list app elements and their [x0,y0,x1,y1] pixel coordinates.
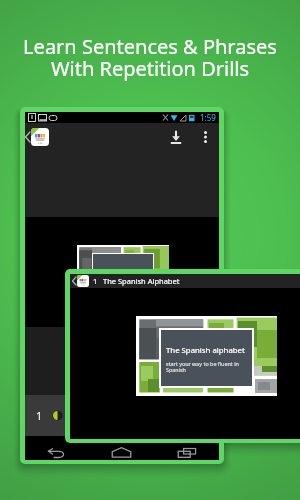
button[interactable]: More options [198,123,212,150]
staticText: 1:59 [200,112,216,123]
button[interactable]: Download [163,123,188,150]
staticText: The Spanish alphabet [166,345,245,356]
button[interactable]: 1 [25,395,219,436]
button[interactable]: Up [70,275,89,287]
button[interactable]: Up [25,128,49,146]
button[interactable]: Home [89,445,154,460]
staticText: start your way to be fluent in Spanish [166,360,257,373]
staticText: Learn Sentences & Phrases With Repetitio… [0,33,300,82]
button[interactable]: Recents [154,445,219,460]
staticText: The Spanish Alphabet [103,276,180,286]
staticText: 1 [93,276,98,286]
staticText: 1 [36,408,43,423]
button[interactable]: Back [25,445,89,460]
